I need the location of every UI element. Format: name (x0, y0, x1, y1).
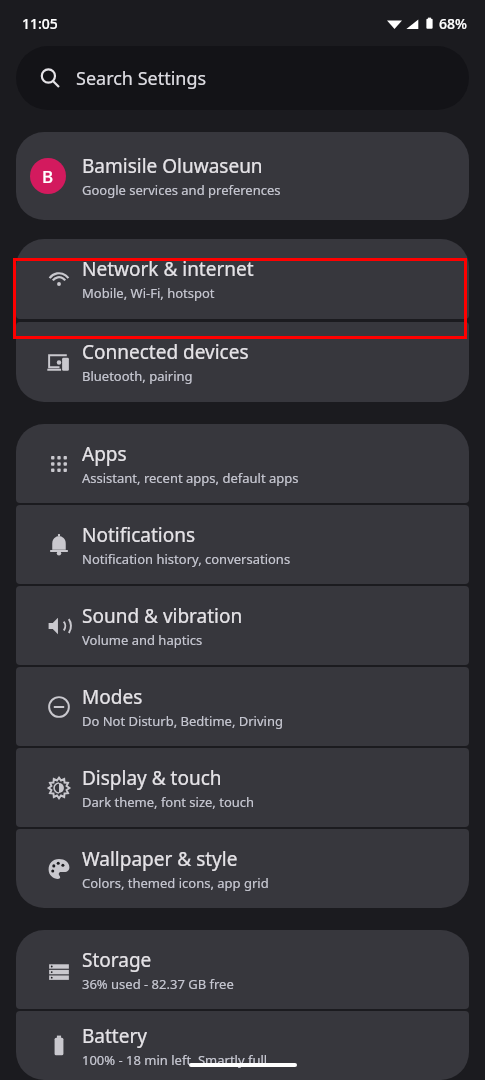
button[interactable]: Apps (16, 424, 469, 503)
staticText: Volume and haptics (82, 631, 203, 649)
staticText: Dark theme, font size, touch (82, 793, 255, 811)
button[interactable]: Display & touch (16, 748, 469, 827)
button[interactable]: Battery (16, 1011, 469, 1080)
staticText: Bluetooth, pairing (82, 367, 193, 385)
button[interactable]: Connected devices (16, 322, 469, 402)
staticText: Modes (82, 684, 143, 710)
staticText: Wallpaper & style (82, 846, 238, 872)
button[interactable]: Sound & vibration (16, 586, 469, 665)
staticText: Colors, themed icons, app grid (82, 874, 269, 892)
button[interactable]: B (16, 132, 469, 220)
staticText: Storage (82, 947, 152, 973)
staticText: Notifications (82, 522, 196, 548)
staticText: B (42, 165, 54, 188)
staticText: 68% (439, 14, 467, 33)
staticText: Mobile, Wi-Fi, hotspot (82, 284, 215, 302)
staticText: Sound & vibration (82, 603, 243, 629)
button[interactable]: Storage (16, 930, 469, 1009)
button[interactable]: Network & internet (16, 239, 469, 319)
staticText: Do Not Disturb, Bedtime, Driving (82, 712, 283, 730)
staticText: Search Settings (76, 66, 207, 91)
staticText: Bamisile Oluwaseun (82, 153, 263, 179)
staticText: Google services and preferences (82, 181, 281, 199)
staticText: Battery (82, 1023, 147, 1049)
button[interactable]: Modes (16, 667, 469, 746)
staticText: 100% - 18 min left, Smartly full (82, 1051, 268, 1069)
button[interactable]: Wallpaper & style (16, 829, 469, 908)
button[interactable]: Search Settings (16, 46, 469, 110)
staticText: 11:05 (22, 14, 58, 33)
staticText: 36% used - 82.37 GB free (82, 975, 234, 993)
staticText: Connected devices (82, 339, 249, 365)
staticText: Network & internet (82, 256, 254, 282)
staticText: Display & touch (82, 765, 222, 791)
staticText: Apps (82, 441, 127, 467)
staticText: Notification history, conversations (82, 550, 291, 568)
button[interactable]: Notifications (16, 505, 469, 584)
staticText: Assistant, recent apps, default apps (82, 469, 299, 487)
